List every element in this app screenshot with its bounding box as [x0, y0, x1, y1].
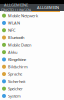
button[interactable]: Speicher: [0, 85, 64, 92]
staticText: Akku: [8, 49, 17, 55]
staticText: Bluetooth: [8, 35, 24, 40]
button[interactable]: Sicherheit: [0, 78, 64, 85]
button[interactable]: Bildschirm: [0, 63, 64, 70]
staticText: Bildschirm: [8, 64, 28, 69]
staticText: Klingeltöne: [8, 57, 26, 62]
button[interactable]: Klingeltöne: [0, 56, 64, 63]
button[interactable]: ALLGEMEIN: [32, 5, 64, 10]
staticText: ALLGEMEIN: [37, 5, 59, 10]
staticText: System: [8, 93, 21, 99]
button[interactable]: Mobile Daten: [0, 41, 64, 48]
button[interactable]: WLAN: [0, 19, 64, 27]
button[interactable]: Sprache: [0, 70, 64, 78]
button[interactable]: Mobile Netzwerk: [0, 12, 64, 19]
staticText: Speicher: [8, 86, 23, 91]
staticText: Mobile Daten: [8, 42, 31, 47]
button[interactable]: NFC: [0, 27, 64, 34]
staticText: Sicherheit: [8, 79, 25, 84]
button[interactable]: Bluetooth: [0, 34, 64, 41]
staticText: Sprache: [8, 71, 22, 77]
button[interactable]: Akku: [0, 48, 64, 56]
button[interactable]: System: [0, 92, 64, 100]
staticText: NFC: [8, 28, 16, 33]
staticText: WLAN: [8, 20, 20, 26]
staticText: Mobile Netzwerk: [8, 13, 38, 18]
staticText: EINSTELLUNGEN: [1, 7, 31, 13]
button[interactable]: ALLGEMEINE: [0, 2, 32, 13]
staticText: ALLGEMEINE: [4, 2, 28, 7]
